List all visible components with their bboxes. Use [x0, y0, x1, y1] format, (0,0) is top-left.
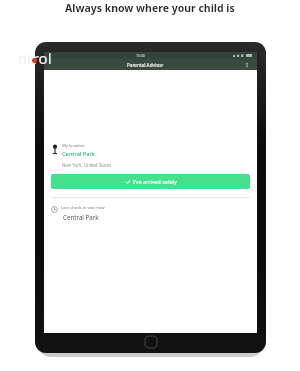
staticText: New York, United States	[62, 162, 112, 168]
staticText: Parental Advisor	[127, 62, 164, 68]
staticText: ntrol	[18, 48, 52, 66]
staticText: I've arrived safely	[133, 178, 177, 185]
staticText: Always know where your child is	[65, 1, 235, 15]
staticText: My location	[62, 143, 85, 149]
staticText: Central Park	[62, 150, 95, 158]
button[interactable]: Last check-in was now	[51, 205, 250, 221]
staticText: Central Park	[63, 213, 99, 221]
staticText: 10:40	[136, 53, 145, 58]
button[interactable]: I've arrived safely	[51, 174, 250, 189]
button[interactable]: More options	[242, 60, 252, 70]
button[interactable]: My location	[51, 143, 250, 158]
staticText: Last check-in was now	[61, 205, 105, 211]
